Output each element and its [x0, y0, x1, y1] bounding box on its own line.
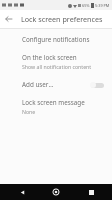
staticText: Configure notifications — [22, 35, 90, 44]
button[interactable]: Back — [9, 184, 35, 200]
button[interactable]: Recent apps — [78, 184, 104, 200]
button[interactable]: Configure notifications — [0, 29, 112, 49]
staticText: 5:39 PM — [95, 3, 110, 8]
button[interactable]: On the lock screen — [0, 49, 112, 75]
staticText: None — [22, 108, 36, 115]
staticText: Lock screen message — [22, 98, 85, 107]
staticText: Add users from lock screen — [22, 80, 56, 89]
staticText: Lock screen preferences — [21, 14, 103, 24]
button[interactable]: Add users from lock screen — [0, 75, 112, 94]
staticText: 65% — [82, 3, 90, 8]
button[interactable]: Back — [0, 10, 18, 28]
button[interactable]: Lock screen message — [0, 94, 112, 121]
button[interactable]: Home — [43, 184, 69, 200]
staticText: On the lock screen — [22, 53, 77, 62]
staticText: Show all notification content — [22, 63, 92, 70]
